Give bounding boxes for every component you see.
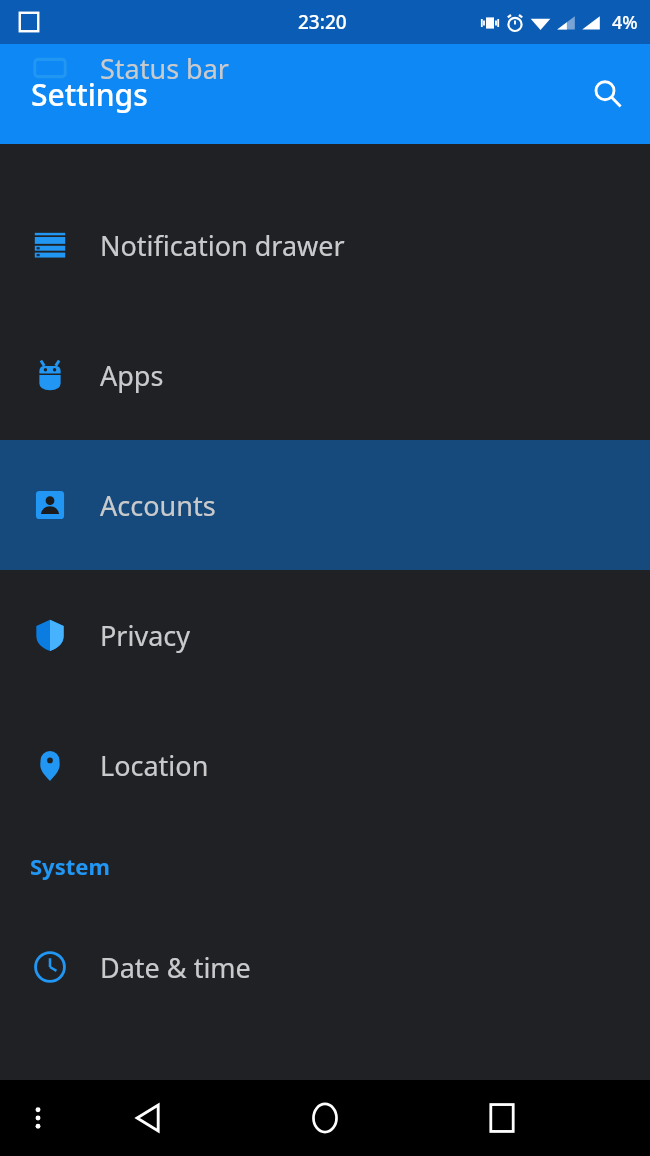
button[interactable]: Apps (0, 310, 650, 440)
staticText: 4% (612, 10, 638, 35)
button[interactable]: Recent apps (470, 1086, 534, 1150)
button[interactable]: Privacy (0, 570, 650, 700)
staticText: System (30, 851, 110, 881)
staticText: Settings (31, 74, 148, 115)
button[interactable]: Search (580, 66, 636, 122)
button[interactable]: Home (293, 1086, 357, 1150)
staticText: Privacy (100, 617, 191, 654)
staticText: Apps (100, 357, 164, 394)
button[interactable]: Accounts (0, 440, 650, 570)
button[interactable]: Date & time (0, 902, 650, 1032)
staticText: Status bar (100, 50, 230, 86)
staticText: 23:20 (298, 9, 347, 35)
staticText: Accounts (100, 487, 216, 524)
staticText: Notification drawer (100, 227, 345, 264)
staticText: Location (100, 747, 209, 784)
staticText: Date & time (100, 949, 251, 986)
button[interactable]: More options (10, 1090, 66, 1146)
button[interactable]: Back (116, 1086, 180, 1150)
button[interactable]: Notification drawer (0, 180, 650, 310)
button[interactable]: Location (0, 700, 650, 830)
